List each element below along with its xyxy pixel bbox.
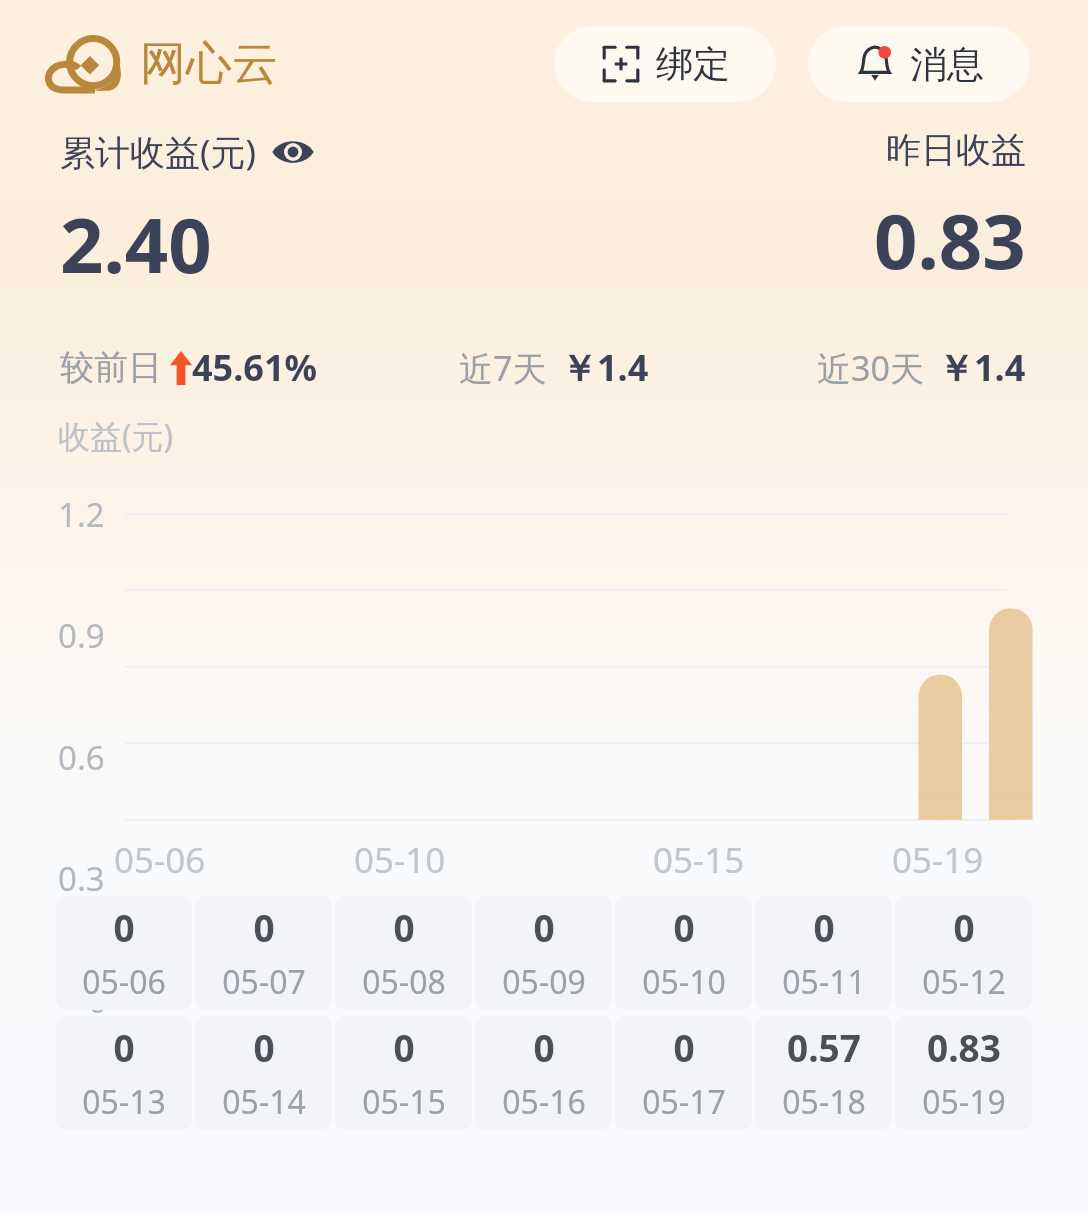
other: 网心云 logo [44, 33, 126, 95]
staticText: 05-09 [502, 960, 586, 1004]
staticText: 05-07 [222, 960, 306, 1004]
staticText: 05-14 [222, 1080, 306, 1124]
staticText: 05-08 [362, 960, 446, 1004]
staticText: 05-15 [653, 836, 745, 884]
staticText: 0 [253, 1022, 275, 1072]
staticText: 1.2 [58, 492, 105, 537]
button[interactable]: 0 [615, 1016, 752, 1130]
staticText: 2.40 [60, 192, 212, 296]
staticText: 0.83 [927, 1022, 1001, 1072]
staticText: 05-10 [354, 836, 446, 884]
button[interactable]: 0 [475, 896, 612, 1010]
staticText: 近7天 [459, 345, 547, 391]
button[interactable]: 显示/隐藏收益 [271, 137, 315, 167]
staticText: 近30天 [817, 345, 924, 391]
staticText: 0 [113, 902, 135, 952]
button[interactable]: 较前日 [60, 343, 317, 392]
staticText: 05-19 [892, 836, 984, 884]
button[interactable]: 0 [56, 896, 192, 1010]
staticText: 0 [533, 1022, 555, 1072]
button[interactable]: 0 [895, 896, 1032, 1010]
staticText: 0 [813, 902, 835, 952]
staticText: 0 [533, 902, 555, 952]
staticText: 消息 [910, 41, 984, 88]
staticText: 05-13 [82, 1080, 166, 1124]
button[interactable]: 消息 [808, 26, 1030, 102]
staticText: 05-06 [114, 836, 206, 884]
staticText: 较前日 [60, 346, 162, 389]
button[interactable]: 0 [335, 1016, 472, 1130]
staticText: ￥1.4 [938, 343, 1026, 392]
button[interactable]: 近7天 [459, 343, 649, 392]
staticText: 05-19 [922, 1080, 1006, 1124]
staticText: 0 [673, 902, 695, 952]
staticText: 0.83 [874, 188, 1026, 292]
staticText: 收益(元) [58, 414, 174, 458]
button[interactable]: 0 [755, 896, 892, 1010]
staticText: 05-10 [642, 960, 726, 1004]
staticText: 0 [673, 1022, 695, 1072]
staticText: 0.57 [787, 1022, 861, 1072]
staticText: 0.9 [58, 613, 105, 658]
button[interactable]: 0 [335, 896, 472, 1010]
button[interactable]: 0 [615, 896, 752, 1010]
staticText: 累计收益(元) [60, 128, 257, 176]
other: 绑定 [600, 43, 642, 85]
staticText: 05-15 [362, 1080, 446, 1124]
staticText: 0 [253, 902, 275, 952]
staticText: 45.61% [192, 343, 317, 392]
button[interactable]: 0.83 [895, 1016, 1032, 1130]
button[interactable]: 网心云 logo [44, 33, 278, 95]
staticText: 绑定 [656, 41, 730, 88]
button[interactable]: 0.57 [755, 1016, 892, 1130]
staticText: 0 [393, 902, 415, 952]
staticText: 05-16 [502, 1080, 586, 1124]
staticText: 05-06 [82, 960, 166, 1004]
staticText: 05-12 [922, 960, 1006, 1004]
button[interactable]: 0 [195, 1016, 332, 1130]
button[interactable]: 近30天 [817, 343, 1026, 392]
staticText: 网心云 [140, 35, 278, 93]
other: 消息 [854, 43, 896, 85]
button[interactable]: 0 [195, 896, 332, 1010]
staticText: 0 [88, 978, 107, 1023]
staticText: 05-18 [782, 1080, 866, 1124]
staticText: 0 [953, 902, 975, 952]
staticText: 0 [393, 1022, 415, 1072]
staticText: 05-17 [642, 1080, 726, 1124]
button[interactable]: 0 [475, 1016, 612, 1130]
button[interactable]: 绑定 [554, 26, 776, 102]
staticText: 0 [113, 1022, 135, 1072]
staticText: ￥1.4 [561, 343, 649, 392]
staticText: 05-11 [782, 960, 866, 1004]
button[interactable]: 0 [56, 1016, 192, 1130]
staticText: 0.3 [58, 856, 105, 901]
staticText: 0.6 [58, 735, 105, 780]
staticText: 昨日收益 [886, 128, 1026, 172]
